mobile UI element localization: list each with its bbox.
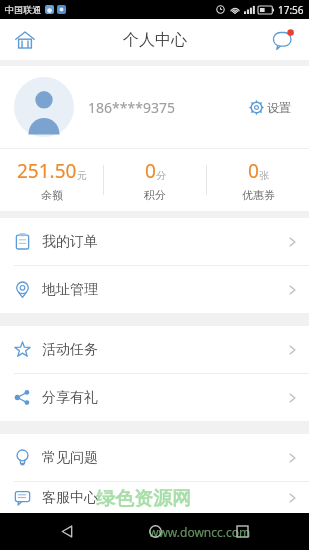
button[interactable]: 0 — [104, 158, 206, 202]
staticText: 251.50 — [17, 158, 77, 184]
staticText: 优惠券 — [242, 188, 275, 202]
button[interactable]: Home — [135, 513, 175, 550]
staticText: 分享有礼 — [42, 389, 98, 407]
button[interactable]: Home — [6, 21, 44, 59]
button[interactable]: 常见问题 — [0, 434, 309, 481]
staticText: 活动任务 — [42, 341, 98, 359]
staticText: 客服中心 — [42, 489, 98, 507]
staticText: 张 — [259, 169, 269, 182]
staticText: 绿色资源网 — [96, 487, 191, 511]
button[interactable]: 我的订单 — [0, 218, 309, 265]
staticText: 余额 — [41, 188, 63, 202]
button[interactable]: 分享有礼 — [0, 374, 309, 421]
staticText: 分 — [156, 169, 166, 182]
button[interactable]: 251.50 — [0, 158, 103, 202]
button[interactable]: Recents — [222, 513, 262, 550]
staticText: www.downcc.com — [149, 524, 251, 540]
staticText: 积分 — [144, 188, 166, 202]
staticText: 常见问题 — [42, 449, 98, 467]
staticText: 地址管理 — [42, 281, 98, 299]
staticText: 元 — [77, 169, 87, 182]
button[interactable]: Back — [47, 513, 87, 550]
staticText: 186****9375 — [88, 98, 175, 117]
staticText: 个人中心 — [123, 30, 187, 50]
staticText: 设置 — [267, 100, 291, 115]
button[interactable]: 0 — [207, 158, 309, 202]
staticText: 中国联通 — [5, 4, 41, 15]
button[interactable]: 活动任务 — [0, 326, 309, 373]
staticText: 0 — [248, 158, 259, 184]
button[interactable]: Messages — [265, 21, 303, 59]
button[interactable]: 地址管理 — [0, 266, 309, 313]
staticText: 0 — [145, 158, 156, 184]
button[interactable]: 客服中心 — [0, 482, 309, 513]
button[interactable]: 设置 — [246, 96, 295, 119]
staticText: 我的订单 — [42, 233, 98, 251]
staticText: 17:56 — [278, 3, 304, 17]
